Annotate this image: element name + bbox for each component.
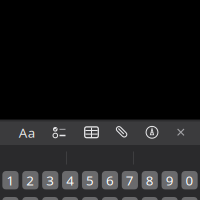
button[interactable]: (	[82, 197, 98, 200]
staticText: @	[164, 197, 176, 200]
button[interactable]: -	[2, 197, 19, 200]
button[interactable]: Hide Keyboard	[167, 120, 195, 145]
button[interactable]: Checklist	[45, 120, 73, 145]
staticText: Aa	[19, 124, 35, 141]
staticText: 2	[26, 171, 34, 189]
staticText: 1	[6, 171, 14, 189]
button[interactable]: Table	[77, 120, 105, 145]
button[interactable]: 7	[122, 171, 138, 190]
button[interactable]: 6	[102, 171, 118, 190]
button[interactable]: @	[162, 197, 178, 200]
staticText: 8	[146, 171, 154, 189]
button[interactable]: 8	[142, 171, 158, 190]
button[interactable]: 5	[82, 171, 98, 190]
button[interactable]: "	[181, 197, 198, 200]
button[interactable]: Text formatting	[13, 120, 41, 145]
button[interactable]: Attach	[108, 120, 136, 145]
staticText: 6	[106, 171, 114, 189]
staticText: 3	[46, 171, 54, 189]
button[interactable]: 1	[2, 171, 19, 190]
button[interactable]: 3	[42, 171, 58, 190]
button[interactable]: ;	[62, 197, 78, 200]
button[interactable]: /	[22, 197, 38, 200]
staticText: 0	[186, 171, 194, 189]
staticText: 7	[126, 171, 134, 189]
staticText: 4	[66, 171, 74, 189]
button[interactable]: 0	[181, 171, 198, 190]
button[interactable]: $	[122, 197, 138, 200]
button[interactable]: Markup	[138, 120, 166, 145]
button[interactable]: :	[42, 197, 58, 200]
button[interactable]: 4	[62, 171, 78, 190]
staticText: 5	[86, 171, 94, 189]
button[interactable]: 2	[22, 171, 38, 190]
staticText: 9	[166, 171, 174, 189]
button[interactable]: 9	[162, 171, 178, 190]
button[interactable]: &	[142, 197, 158, 200]
button[interactable]: )	[102, 197, 118, 200]
